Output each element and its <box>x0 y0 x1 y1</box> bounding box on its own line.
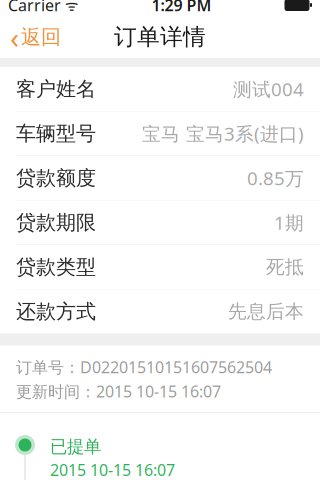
staticText: 贷款额度 <box>16 166 96 190</box>
staticText: 1:29 PM <box>151 0 211 16</box>
staticText: 0.85万 <box>247 166 304 190</box>
staticText: 测试004 <box>233 77 304 101</box>
staticText: ᯤ <box>61 0 78 15</box>
staticText: 订单详情 <box>114 23 206 51</box>
staticText: 返回 <box>21 25 61 49</box>
staticText: 宝马 宝马3系(进口) <box>142 121 304 146</box>
staticText: 已提单 <box>50 436 101 457</box>
staticText: ‹ <box>10 17 19 56</box>
staticText: 死抵 <box>266 255 304 278</box>
staticText: 1期 <box>274 210 304 235</box>
staticText: Carrier <box>8 0 61 16</box>
staticText: 车辆型号 <box>16 121 96 146</box>
staticText: 更新时间：2015 10-15 16:07 <box>16 381 221 402</box>
staticText: 还款方式 <box>16 299 96 324</box>
staticText: 先息后本 <box>228 300 304 323</box>
staticText: 客户姓名 <box>16 77 96 101</box>
button[interactable]: ‹ <box>0 15 71 59</box>
staticText: 贷款期限 <box>16 210 96 235</box>
staticText: 2015 10-15 16:07 <box>50 459 175 480</box>
staticText: 订单号：D02201510151607562504 <box>16 356 272 378</box>
staticText: 贷款类型 <box>16 255 96 279</box>
